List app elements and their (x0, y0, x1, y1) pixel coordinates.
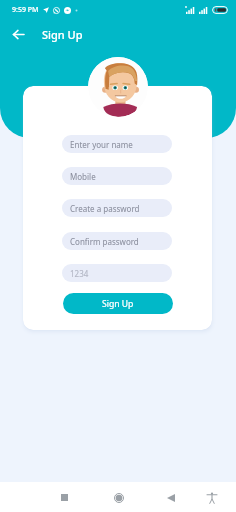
button[interactable]: Enter your name (62, 135, 172, 153)
button[interactable]: Back (160, 487, 181, 508)
staticText: 9:59 PM (12, 5, 39, 15)
staticText: Create a password (70, 203, 140, 214)
button[interactable]: Accessibility (201, 487, 222, 508)
staticText: Mobile (70, 171, 96, 182)
button[interactable]: Create a password (62, 199, 172, 217)
staticText: Sign Up (42, 27, 83, 42)
button[interactable]: Sign Up (63, 293, 173, 314)
button[interactable]: Recents (54, 487, 75, 508)
staticText: Confirm password (70, 236, 139, 247)
staticText: 1234 (70, 268, 89, 279)
staticText: Enter your name (70, 139, 133, 150)
button[interactable]: 1234 (62, 264, 172, 282)
button[interactable]: Confirm password (62, 232, 172, 250)
button[interactable]: Back (7, 23, 29, 45)
button[interactable]: Home (108, 487, 129, 508)
staticText: Sign Up (102, 298, 134, 310)
button[interactable]: Mobile (62, 167, 172, 185)
